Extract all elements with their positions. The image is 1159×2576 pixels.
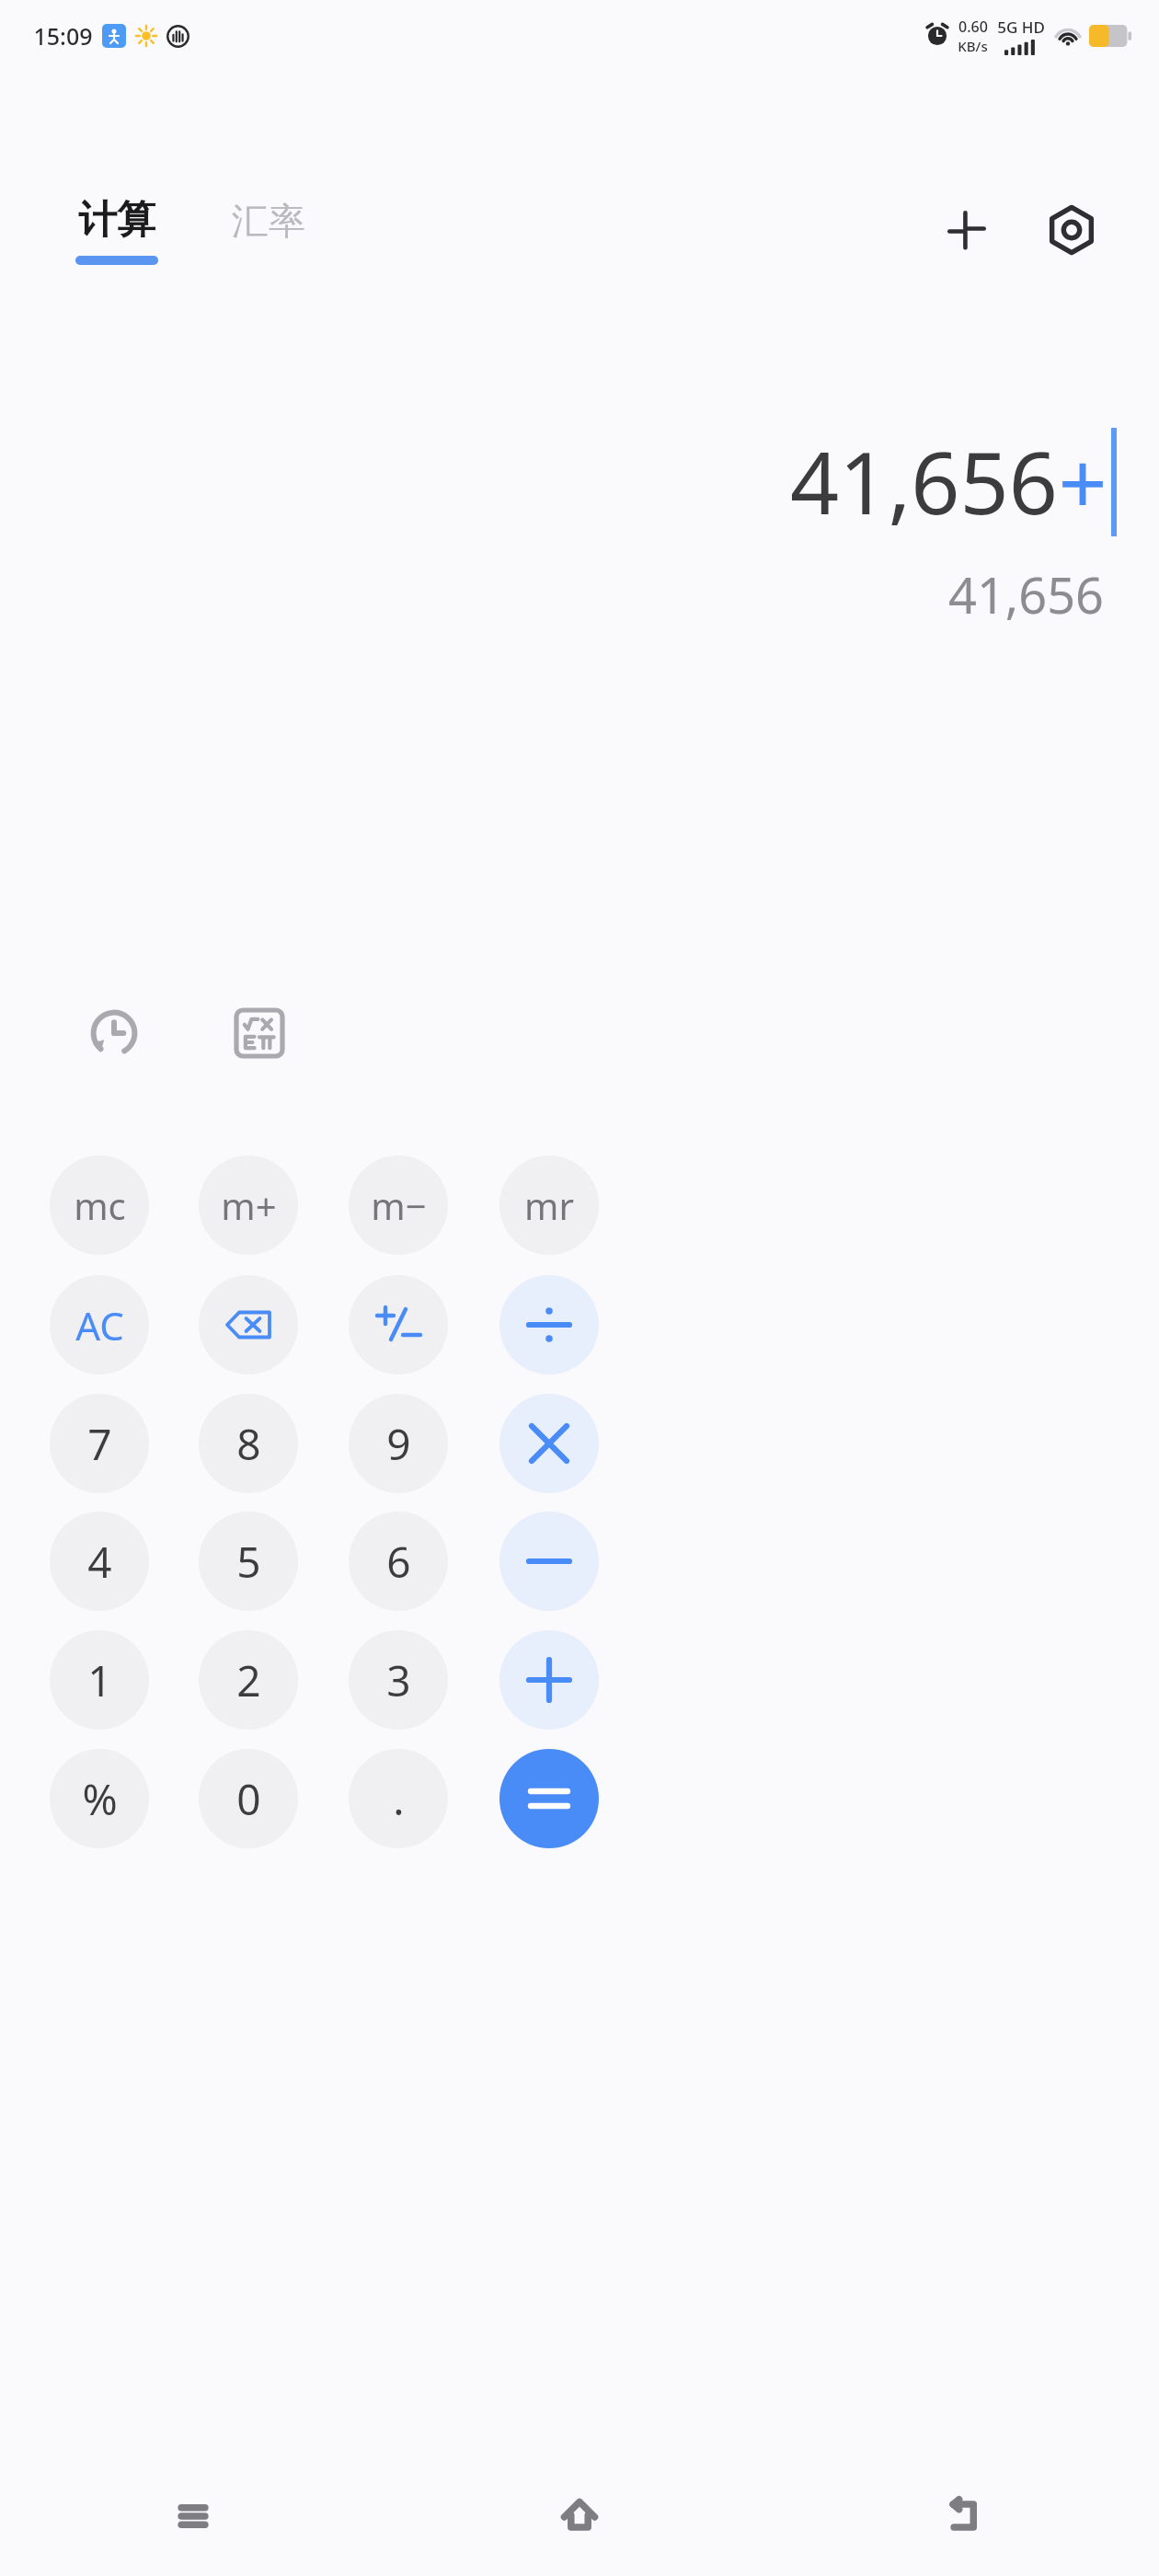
staticText: m+	[221, 1180, 277, 1230]
button[interactable]: Plus minus	[349, 1275, 448, 1374]
staticText: AC	[75, 1299, 124, 1351]
staticText: 9	[386, 1415, 411, 1473]
staticText: 计算	[78, 196, 155, 245]
button[interactable]: Minus	[499, 1512, 599, 1611]
button[interactable]: m−	[349, 1156, 448, 1255]
button[interactable]: Backspace	[199, 1275, 298, 1374]
staticText: +	[1058, 423, 1107, 540]
button[interactable]: 4	[50, 1512, 149, 1611]
button[interactable]: m+	[199, 1156, 298, 1255]
button[interactable]: 计算	[72, 196, 162, 265]
button[interactable]: Recents	[0, 2456, 386, 2576]
staticText: 7	[87, 1415, 112, 1473]
staticText: 3	[386, 1651, 411, 1709]
button[interactable]: mc	[50, 1156, 149, 1255]
button[interactable]: History	[70, 989, 158, 1077]
staticText: 41,656	[790, 423, 1058, 540]
button[interactable]: 5	[199, 1512, 298, 1611]
button[interactable]: %	[50, 1749, 149, 1848]
staticText: 0	[236, 1770, 261, 1828]
staticText: 2	[236, 1651, 261, 1709]
staticText: 5G HD	[997, 17, 1045, 38]
button[interactable]: 3	[349, 1630, 448, 1730]
button[interactable]: 7	[50, 1394, 149, 1493]
button[interactable]: 汇率	[228, 208, 309, 254]
staticText: .	[393, 1770, 405, 1828]
button[interactable]: .	[349, 1749, 448, 1848]
staticText: KB/s	[958, 37, 988, 55]
button[interactable]: 1	[50, 1630, 149, 1730]
button[interactable]: AC	[50, 1275, 149, 1374]
staticText: 汇率	[232, 198, 305, 244]
button[interactable]: Plus	[499, 1630, 599, 1730]
button[interactable]: 9	[349, 1394, 448, 1493]
button[interactable]: mr	[499, 1156, 599, 1255]
button[interactable]: Back	[773, 2456, 1159, 2576]
button[interactable]: 0	[199, 1749, 298, 1848]
button[interactable]: Home	[386, 2456, 773, 2576]
staticText: mr	[524, 1180, 574, 1230]
button[interactable]: 8	[199, 1394, 298, 1493]
staticText: mc	[74, 1180, 126, 1230]
staticText: 0.60	[958, 17, 988, 37]
staticText: 15:09	[33, 20, 93, 52]
staticText: 4	[87, 1533, 112, 1591]
button[interactable]: Scientific	[215, 989, 304, 1077]
staticText: %	[82, 1770, 118, 1828]
button[interactable]: Fullscreen	[927, 190, 1006, 270]
button[interactable]: Multiply	[499, 1394, 599, 1493]
staticText: 5	[236, 1533, 261, 1591]
staticText: m−	[371, 1180, 427, 1230]
button[interactable]: 2	[199, 1630, 298, 1730]
button[interactable]: Settings	[1032, 190, 1111, 270]
staticText: 1	[87, 1651, 112, 1709]
staticText: 8	[236, 1415, 261, 1473]
staticText: 6	[386, 1533, 411, 1591]
staticText: 41,656	[948, 560, 1104, 628]
button[interactable]: Divide	[499, 1275, 599, 1374]
button[interactable]: Equals	[499, 1749, 599, 1848]
button[interactable]: 6	[349, 1512, 448, 1611]
